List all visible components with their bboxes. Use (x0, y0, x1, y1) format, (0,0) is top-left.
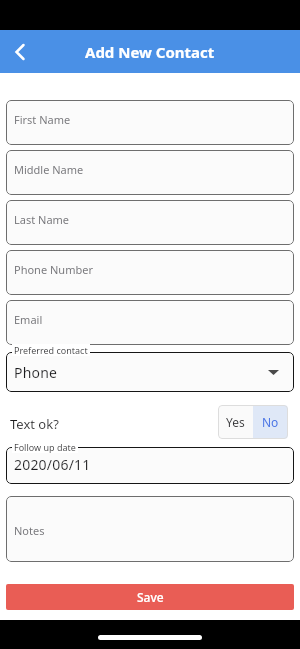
staticText: Text ok? (10, 415, 59, 433)
staticText: First Name (14, 112, 71, 127)
button[interactable] (0, 30, 40, 73)
button[interactable]: 2020/06/11 (6, 447, 294, 484)
button[interactable]: Email (6, 300, 294, 345)
staticText: Last Name (14, 212, 70, 227)
button[interactable]: Phone (6, 352, 294, 392)
staticText: Add New Contact (85, 42, 215, 62)
staticText: Email (14, 312, 43, 327)
button[interactable]: Phone Number (6, 250, 294, 295)
staticText: Phone (14, 363, 58, 382)
staticText: Follow up date (14, 441, 76, 453)
staticText: Save (137, 589, 164, 605)
staticText: No (262, 414, 279, 430)
button[interactable]: Save (6, 584, 294, 610)
button[interactable]: Notes (6, 496, 294, 562)
button[interactable]: Yes (218, 405, 253, 439)
button[interactable]: Last Name (6, 200, 294, 245)
staticText: Preferred contact (14, 344, 88, 356)
staticText: Yes (226, 414, 245, 430)
staticText: Notes (14, 523, 45, 538)
button[interactable]: No (253, 405, 288, 439)
staticText: Middle Name (14, 162, 84, 177)
staticText: 2020/06/11 (14, 455, 91, 474)
button[interactable]: First Name (6, 100, 294, 145)
staticText: Phone Number (14, 262, 93, 277)
button[interactable]: Middle Name (6, 150, 294, 195)
